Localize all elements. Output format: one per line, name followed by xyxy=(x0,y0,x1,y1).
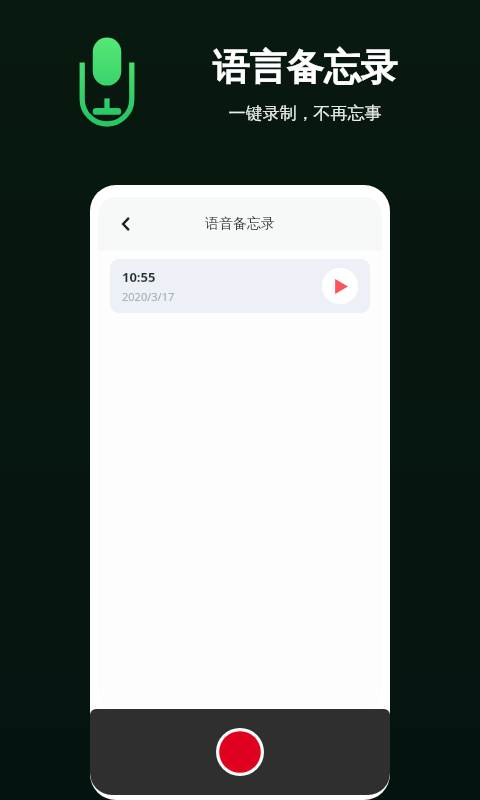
button[interactable]: 10:55 xyxy=(110,259,370,313)
staticText: 2020/3/17 xyxy=(122,289,175,304)
staticText: 语言备忘录 xyxy=(200,44,410,91)
staticText: 语音备忘录 xyxy=(205,215,275,233)
staticText: 一键录制，不再忘事 xyxy=(200,103,410,124)
button[interactable]: Back xyxy=(106,204,146,244)
button[interactable]: Play xyxy=(322,268,358,304)
button[interactable]: Record xyxy=(216,728,264,776)
staticText: 10:55 xyxy=(122,268,156,286)
